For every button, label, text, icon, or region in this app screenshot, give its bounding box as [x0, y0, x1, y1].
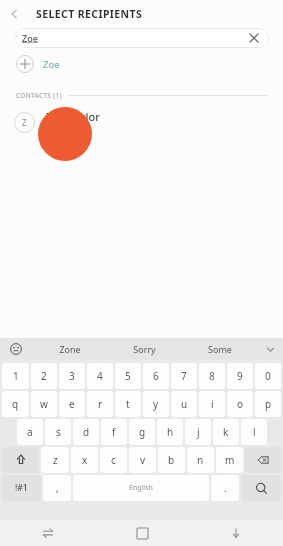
- button[interactable]: h: [157, 419, 183, 445]
- button[interactable]: Back: [0, 0, 28, 28]
- button[interactable]: p: [255, 391, 281, 417]
- button[interactable]: q: [2, 391, 29, 417]
- button[interactable]: !#1: [2, 475, 41, 501]
- staticText: i: [211, 397, 214, 411]
- button[interactable]: c: [100, 447, 127, 473]
- button[interactable]: Zone: [32, 338, 107, 360]
- button[interactable]: r: [87, 391, 113, 417]
- staticText: 0: [265, 369, 271, 383]
- button[interactable]: Recents: [0, 520, 95, 546]
- button[interactable]: 9: [227, 363, 253, 389]
- button[interactable]: Zoe: [14, 28, 269, 48]
- button[interactable]: 1: [2, 363, 29, 389]
- button[interactable]: Backspace: [245, 447, 281, 473]
- staticText: m: [225, 453, 235, 467]
- button[interactable]: v: [129, 447, 156, 473]
- staticText: d: [83, 425, 90, 439]
- staticText: !#1: [15, 482, 28, 494]
- button[interactable]: e: [59, 391, 85, 417]
- button[interactable]: Zoe: [0, 48, 283, 80]
- button[interactable]: 2: [31, 363, 57, 389]
- button[interactable]: 3: [59, 363, 85, 389]
- staticText: 9: [237, 369, 243, 383]
- button[interactable]: g: [129, 419, 155, 445]
- staticText: b: [168, 453, 175, 467]
- button[interactable]: a: [17, 419, 43, 445]
- staticText: r: [98, 397, 103, 411]
- button[interactable]: 5: [115, 363, 141, 389]
- staticText: v: [140, 453, 146, 467]
- button[interactable]: 8: [199, 363, 225, 389]
- button[interactable]: m: [216, 447, 243, 473]
- button[interactable]: 4: [87, 363, 113, 389]
- staticText: o: [237, 397, 244, 411]
- staticText: SELECT RECIPIENTS: [36, 7, 143, 21]
- staticText: f: [112, 425, 116, 439]
- staticText: 2: [41, 369, 47, 383]
- staticText: Z: [22, 117, 27, 128]
- button[interactable]: d: [73, 419, 99, 445]
- staticText: 8: [209, 369, 215, 383]
- staticText: 3: [69, 369, 75, 383]
- staticText: h: [167, 425, 174, 439]
- staticText: j: [197, 425, 200, 439]
- button[interactable]: Some: [182, 338, 257, 360]
- button[interactable]: Z: [0, 102, 283, 142]
- staticText: l: [253, 425, 256, 439]
- button[interactable]: Hide keyboard: [189, 520, 283, 546]
- button[interactable]: ,: [43, 475, 71, 501]
- staticText: s: [56, 425, 61, 439]
- button[interactable]: Home: [95, 520, 189, 546]
- staticText: g: [139, 425, 146, 439]
- button[interactable]: 6: [143, 363, 169, 389]
- button[interactable]: u: [171, 391, 197, 417]
- staticText: t: [126, 397, 130, 411]
- staticText: Zoe: [22, 32, 38, 44]
- button[interactable]: 0: [255, 363, 281, 389]
- button[interactable]: 7: [171, 363, 197, 389]
- button[interactable]: s: [45, 419, 71, 445]
- button[interactable]: i: [199, 391, 225, 417]
- button[interactable]: l: [241, 419, 267, 445]
- staticText: p: [265, 397, 272, 411]
- button[interactable]: Sorry: [107, 338, 182, 360]
- button[interactable]: English: [73, 475, 209, 501]
- staticText: n: [197, 453, 204, 467]
- button[interactable]: Shift: [2, 447, 39, 473]
- button[interactable]: x: [71, 447, 98, 473]
- button[interactable]: Clear text: [247, 31, 261, 45]
- button[interactable]: y: [143, 391, 169, 417]
- button[interactable]: t: [115, 391, 141, 417]
- staticText: ,: [56, 481, 59, 495]
- staticText: y: [153, 397, 159, 411]
- button[interactable]: z: [41, 447, 69, 473]
- staticText: 4: [97, 369, 103, 383]
- staticText: 1: [13, 369, 19, 383]
- button[interactable]: Expand suggestions: [257, 338, 283, 360]
- staticText: Some: [208, 343, 232, 355]
- button[interactable]: Emoji: [0, 338, 32, 360]
- staticText: 7: [181, 369, 187, 383]
- staticText: 5: [125, 369, 131, 383]
- button[interactable]: f: [101, 419, 127, 445]
- button[interactable]: j: [185, 419, 211, 445]
- staticText: a: [27, 425, 33, 439]
- button[interactable]: b: [158, 447, 185, 473]
- staticText: CONTACTS (1): [16, 91, 62, 100]
- button[interactable]: n: [187, 447, 214, 473]
- button[interactable]: Search: [241, 475, 281, 501]
- button[interactable]: o: [227, 391, 253, 417]
- staticText: q: [12, 397, 19, 411]
- staticText: z: [53, 453, 58, 467]
- staticText: Zone: [59, 343, 81, 355]
- staticText: 6: [153, 369, 159, 383]
- staticText: Zoe: [43, 58, 60, 71]
- staticText: .: [224, 481, 227, 495]
- staticText: c: [111, 453, 116, 467]
- button[interactable]: k: [213, 419, 239, 445]
- staticText: Sorry: [133, 343, 156, 355]
- button[interactable]: w: [31, 391, 57, 417]
- button[interactable]: .: [211, 475, 239, 501]
- staticText: x: [82, 453, 88, 467]
